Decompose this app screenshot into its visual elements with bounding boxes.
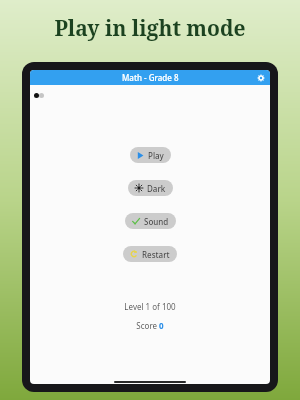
button[interactable]: Settings: [255, 72, 266, 83]
staticText: Math - Grade 8: [122, 72, 179, 83]
button[interactable]: Sound: [125, 213, 176, 229]
staticText: Play in light mode: [0, 14, 300, 43]
button[interactable]: Dark: [128, 180, 173, 196]
staticText: Sound: [144, 216, 169, 227]
staticText: Dark: [147, 183, 166, 194]
staticText: Play: [148, 150, 164, 161]
staticText: Score 0: [136, 320, 164, 331]
staticText: Restart: [142, 249, 170, 260]
button[interactable]: Restart: [123, 246, 177, 262]
staticText: Level 1 of 100: [124, 301, 176, 312]
button[interactable]: Play: [130, 147, 171, 163]
